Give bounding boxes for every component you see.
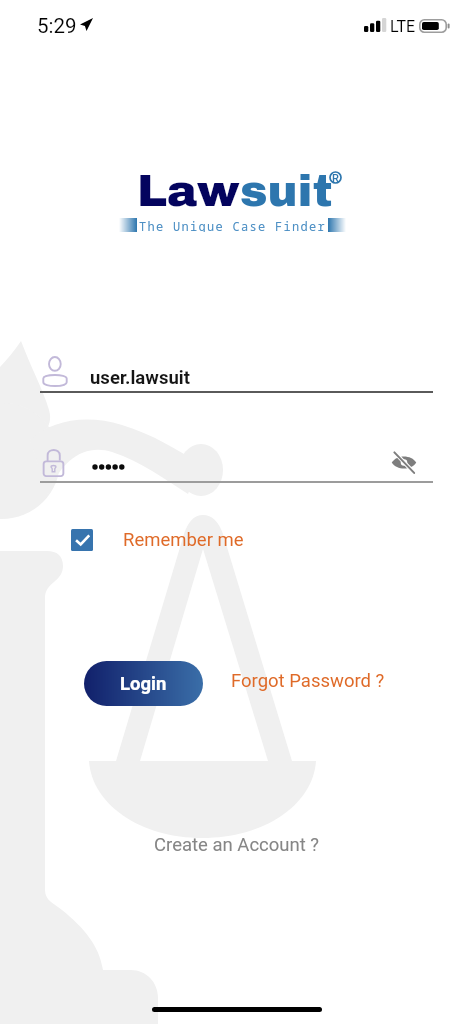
staticText: The Unique Case Finder [139, 218, 327, 232]
staticText: LTE [390, 17, 416, 36]
button[interactable]: Login [84, 661, 203, 706]
button[interactable]: Forgot Password ? [231, 670, 385, 692]
staticText: suit [240, 166, 333, 215]
staticText: Create an Account ? [154, 834, 320, 856]
button[interactable]: Remember me [123, 529, 244, 551]
button[interactable]: Show password [389, 447, 419, 477]
button[interactable]: Create an Account ? [154, 834, 320, 856]
staticText: R [332, 172, 339, 185]
staticText: Login [120, 673, 167, 695]
staticText: Law [137, 166, 240, 215]
staticText: user.lawsuit [90, 367, 190, 389]
staticText: 5:29 [37, 14, 77, 38]
button[interactable]: Remember me checkbox [71, 529, 93, 551]
